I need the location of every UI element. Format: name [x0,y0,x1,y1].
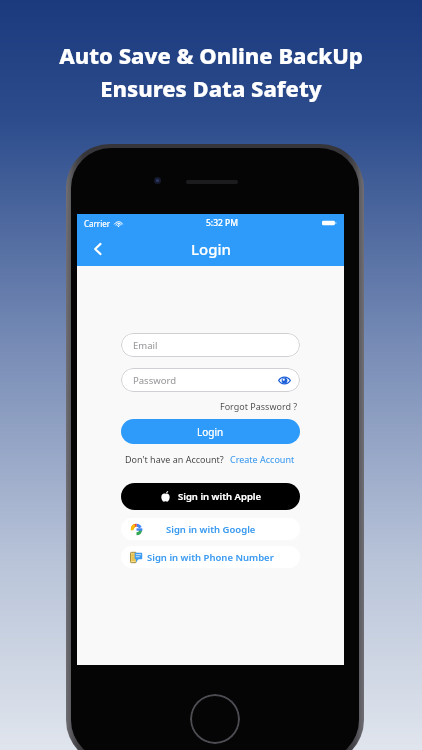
staticText: Carrier [84,218,111,229]
staticText: Password [133,374,176,387]
staticText: Ensures Data Safety [100,73,322,103]
staticText: Forgot Password ? [220,400,298,412]
button[interactable]: Email [121,333,300,357]
staticText: 5:32 PM [206,217,239,229]
button[interactable]: Home [190,694,240,744]
staticText: Auto Save & Online BackUp [59,40,363,70]
button[interactable]: Create Account [229,452,296,466]
button[interactable]: Login [121,419,300,444]
staticText: Create Account [230,453,295,465]
button[interactable]: Show password [277,373,291,387]
staticText: Sign in with Phone Number [147,551,274,564]
button[interactable]: Back [83,234,113,264]
staticText: Sign in with Apple [178,490,262,503]
button[interactable]: Forgot Password ? [218,399,300,413]
button[interactable]: Password [121,368,300,392]
staticText: Don't have an Account? [125,453,224,465]
staticText: Email [133,339,158,352]
button[interactable]: Sign in with Apple [121,483,300,510]
staticText: Login [197,425,224,439]
staticText: Login [191,239,231,259]
button[interactable]: Sign in with Google [121,518,300,540]
button[interactable]: Sign in with Phone Number [121,546,300,568]
staticText: Sign in with Google [166,523,256,536]
